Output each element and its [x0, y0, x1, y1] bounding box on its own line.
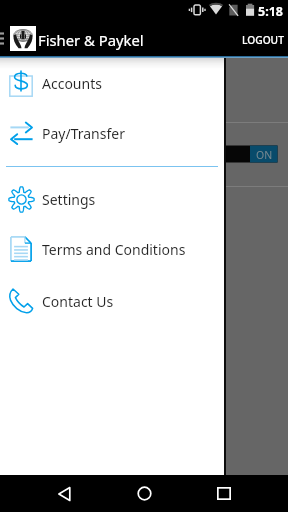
- staticText: Pay/Transfer: [42, 124, 125, 143]
- button[interactable]: Home: [120, 475, 168, 512]
- button[interactable]: LOGOUT: [238, 23, 288, 57]
- other: Open navigation drawer: [0, 32, 5, 44]
- staticText: Contact Us: [42, 292, 114, 311]
- staticText: 5:18: [258, 3, 283, 20]
- button[interactable]: Recent apps: [200, 475, 248, 512]
- staticText: Accounts: [42, 74, 102, 93]
- staticText: Fisher & Paykel: [38, 30, 144, 50]
- staticText: ON: [256, 148, 273, 162]
- staticText: LOGOUT: [242, 33, 284, 47]
- staticText: Terms and Conditions: [42, 240, 186, 259]
- button[interactable]: Back: [40, 475, 88, 512]
- button[interactable]: Pay/Transfer: [0, 108, 224, 158]
- button[interactable]: Contact Us: [0, 276, 224, 326]
- staticText: Settings: [42, 190, 96, 209]
- button[interactable]: Settings: [0, 174, 224, 224]
- button[interactable]: Accounts: [0, 58, 224, 108]
- button[interactable]: Terms and Conditions: [0, 224, 224, 274]
